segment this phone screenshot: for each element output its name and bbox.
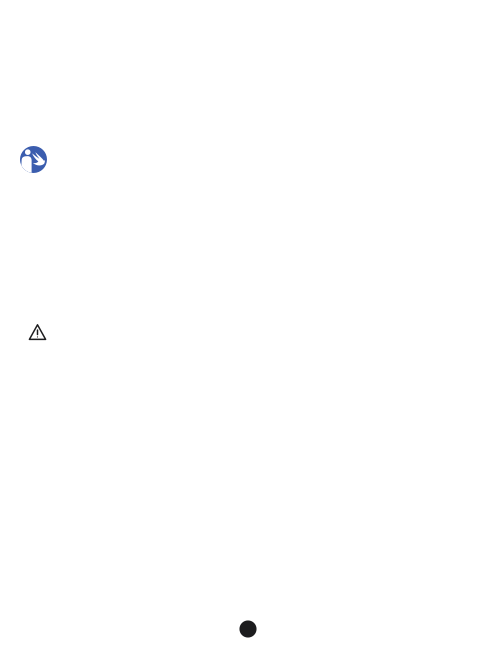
button[interactable]: Profile (20, 146, 47, 173)
